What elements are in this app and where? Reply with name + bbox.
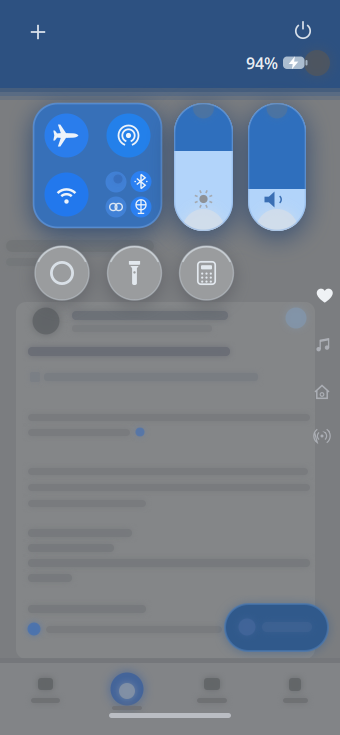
button[interactable]: Airplane Mode xyxy=(44,113,88,157)
button[interactable]: AirDrop xyxy=(106,113,150,157)
button[interactable]: Home Controls xyxy=(314,384,330,399)
button[interactable]: Calculator xyxy=(179,246,233,300)
button[interactable]: Connectivity xyxy=(313,430,331,442)
button[interactable]: Flashlight xyxy=(107,246,161,300)
button[interactable]: Volume xyxy=(248,103,306,231)
button[interactable]: Now Playing xyxy=(316,336,330,352)
button[interactable]: Brightness xyxy=(174,103,233,231)
staticText: 94% xyxy=(246,52,278,74)
button[interactable]: Add controls xyxy=(30,24,46,40)
button[interactable]: Satellite xyxy=(130,196,151,217)
button[interactable]: Bluetooth xyxy=(130,171,151,192)
button[interactable]: Personal Hotspot xyxy=(105,196,126,217)
button[interactable]: Shortcut xyxy=(35,246,89,300)
button[interactable]: Power xyxy=(293,20,313,40)
button[interactable]: Favorites xyxy=(317,289,331,301)
button[interactable]: Wi-Fi xyxy=(44,172,88,216)
button[interactable]: Cellular Data xyxy=(105,171,126,192)
